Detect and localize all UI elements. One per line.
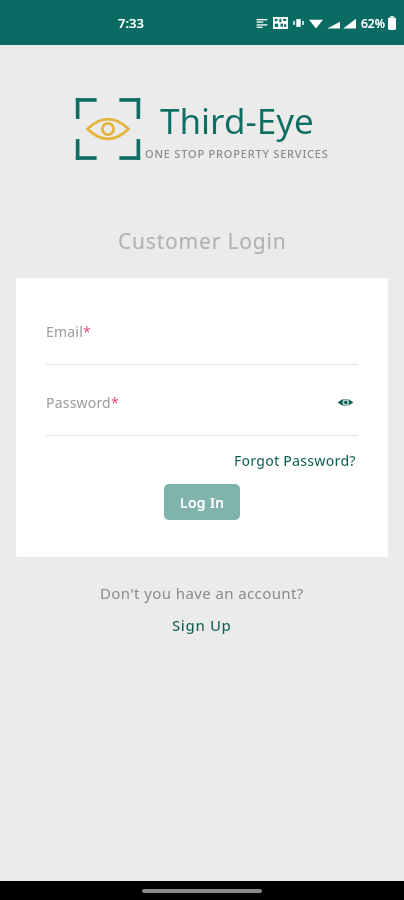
button[interactable]: Forgot Password? xyxy=(232,448,358,473)
staticText: Don't you have an account? xyxy=(100,583,304,603)
staticText: Forgot Password? xyxy=(234,451,356,470)
button[interactable]: Sign Up xyxy=(164,613,240,637)
staticText: Log In xyxy=(180,493,225,512)
staticText: Sign Up xyxy=(172,615,232,635)
staticText: ONE STOP PROPERTY SERVICES xyxy=(145,146,329,161)
staticText: Third-Eye xyxy=(160,97,314,145)
button[interactable]: Show password xyxy=(332,389,358,415)
staticText: 62% xyxy=(361,15,385,31)
staticText: 7:33 xyxy=(118,14,144,32)
staticText: Customer Login xyxy=(118,227,287,256)
button[interactable]: Log In xyxy=(164,484,240,520)
staticText: Email* xyxy=(46,322,91,341)
staticText: Password* xyxy=(46,393,119,412)
